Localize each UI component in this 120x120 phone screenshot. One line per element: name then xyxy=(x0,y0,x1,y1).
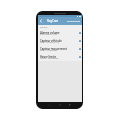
staticText: Tous : 30 min (H: 0) xyxy=(40,41,59,44)
staticText: Général xyxy=(40,26,48,29)
staticText: Heure : Connexion xyxy=(40,57,59,60)
staticText: Capteur véhicule xyxy=(40,39,62,43)
button[interactable]: Toggle xyxy=(79,56,81,58)
staticText: ENREGISTRER xyxy=(67,20,81,23)
button[interactable]: Back xyxy=(39,19,43,23)
button[interactable]: Back xyxy=(38,17,82,25)
staticText: RegCare xyxy=(47,19,59,23)
button[interactable]: Toggle xyxy=(79,48,81,50)
button[interactable]: Heure limite xyxy=(38,53,82,61)
staticText: Tous : 30 minutes xyxy=(40,49,58,52)
staticText: Capteur mouvement xyxy=(40,47,67,51)
staticText: Heure limite xyxy=(40,55,57,59)
button[interactable]: Toggle xyxy=(79,32,81,34)
staticText: Alarme volume xyxy=(40,31,60,35)
button[interactable]: Alarme volume xyxy=(38,29,82,37)
button[interactable]: Recents xyxy=(69,104,71,106)
button[interactable]: Toggle xyxy=(79,40,81,42)
button[interactable]: Capteur mouvement xyxy=(38,45,82,53)
button[interactable]: Back xyxy=(48,104,50,106)
button[interactable]: Capteur véhicule xyxy=(38,37,82,45)
staticText: Sans niveau : Son xyxy=(40,33,58,36)
